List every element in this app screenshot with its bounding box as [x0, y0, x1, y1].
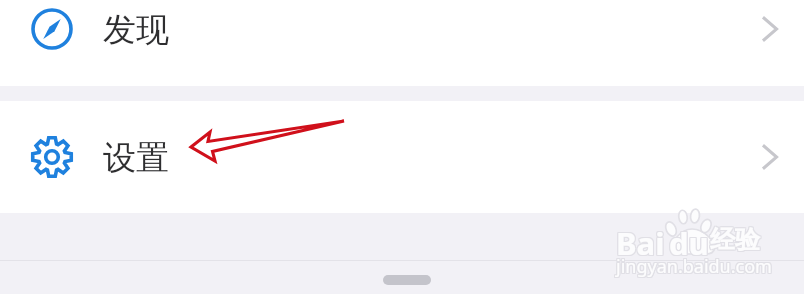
staticText: du	[670, 223, 710, 265]
staticText: Bai	[617, 221, 666, 263]
staticText: Bai	[616, 222, 665, 264]
staticText: 经验	[710, 224, 760, 255]
staticText: 经验	[710, 225, 760, 256]
staticText: Bai	[615, 222, 664, 264]
staticText: Bai	[617, 222, 666, 264]
other: Discover	[31, 8, 73, 50]
staticText: jingyan.baidu.com	[617, 253, 773, 278]
staticText: du	[668, 223, 708, 265]
staticText: du	[668, 221, 708, 263]
staticText: 发现	[103, 9, 169, 51]
staticText: du	[669, 221, 709, 263]
other: Settings	[31, 136, 73, 178]
staticText: 经验	[711, 225, 761, 256]
staticText: Bai	[616, 223, 665, 265]
staticText: 经验	[711, 223, 761, 254]
staticText: jingyan.baidu.com	[615, 253, 771, 278]
staticText: 经验	[709, 225, 759, 256]
other: Home indicator	[383, 275, 431, 285]
staticText: du	[670, 222, 710, 264]
staticText: jingyan.baidu.com	[617, 255, 773, 280]
staticText: Bai	[616, 221, 665, 263]
staticText: du	[669, 222, 709, 264]
staticText: Bai	[615, 223, 664, 265]
staticText: du	[668, 222, 708, 264]
staticText: jingyan.baidu.com	[616, 253, 772, 278]
staticText: 经验	[709, 223, 759, 254]
button[interactable]: Settings	[0, 101, 804, 213]
staticText: du	[669, 223, 709, 265]
staticText: Bai	[615, 221, 664, 263]
button[interactable]: Discover	[0, 0, 804, 86]
staticText: jingyan.baidu.com	[616, 254, 772, 279]
staticText: 经验	[711, 224, 761, 255]
staticText: jingyan.baidu.com	[615, 255, 771, 280]
other: Open	[759, 15, 781, 43]
staticText: du	[670, 221, 710, 263]
staticText: Bai	[617, 223, 666, 265]
staticText: 设置	[103, 137, 169, 179]
staticText: jingyan.baidu.com	[617, 254, 773, 279]
staticText: jingyan.baidu.com	[615, 254, 771, 279]
other: Open	[759, 143, 781, 171]
staticText: jingyan.baidu.com	[616, 255, 772, 280]
staticText: 经验	[710, 223, 760, 254]
staticText: 经验	[709, 224, 759, 255]
